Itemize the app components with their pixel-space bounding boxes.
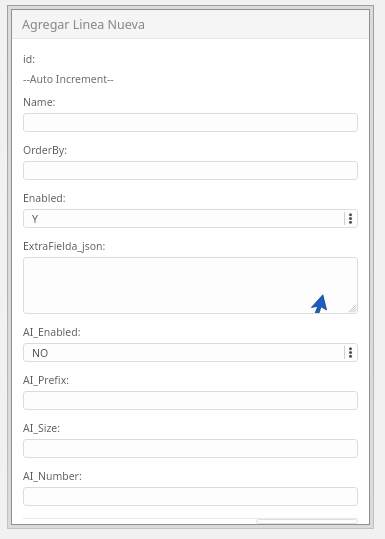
staticText: AI_Number: (23, 469, 82, 483)
button[interactable] (23, 257, 358, 314)
staticText: ExtraFielda_json: (23, 239, 106, 253)
staticText: Agregar Linea Nueva (22, 16, 145, 33)
button[interactable]: Text field (23, 487, 358, 506)
staticText: id: (23, 52, 35, 66)
staticText: Y (32, 212, 38, 226)
button[interactable]: Text field (23, 161, 358, 180)
button[interactable]: NO (23, 343, 358, 362)
button[interactable]: Y (23, 209, 358, 228)
button[interactable]: Text field (23, 439, 358, 458)
staticText: NO (32, 346, 49, 360)
staticText: AI_Enabled: (23, 325, 81, 339)
staticText: --Auto Increment-- (23, 72, 114, 86)
staticText: AI_Prefix: (23, 373, 70, 387)
staticText: OrderBy: (23, 143, 68, 157)
button[interactable]: Agregar Linea (256, 519, 358, 524)
button[interactable]: Text field (23, 113, 358, 132)
button[interactable]: Text field (23, 391, 358, 410)
staticText: Name: (23, 95, 56, 109)
staticText: AI_Size: (23, 421, 61, 435)
staticText: Enabled: (23, 191, 66, 205)
